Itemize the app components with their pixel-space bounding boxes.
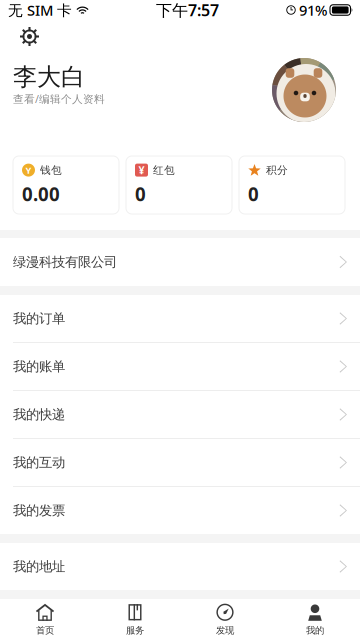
button[interactable]: 发现 <box>180 599 270 640</box>
staticText: 查看/编辑个人资料 <box>13 92 105 106</box>
button[interactable]: 设置 <box>20 27 39 46</box>
button[interactable]: 头像 <box>272 58 336 122</box>
staticText: 0.00 <box>22 182 60 206</box>
staticText: 我的互动 <box>13 454 65 471</box>
staticText: 我的 <box>306 625 324 636</box>
button[interactable]: 我的发票 <box>0 487 360 534</box>
staticText: Y <box>25 164 31 176</box>
staticText: ¥ <box>138 163 144 177</box>
button[interactable]: 绿漫科技有限公司 <box>0 238 360 286</box>
staticText: 我的快递 <box>13 406 65 423</box>
staticText: 0 <box>135 182 146 206</box>
staticText: 发现 <box>216 625 234 636</box>
button[interactable]: 我的互动 <box>0 439 360 486</box>
staticText: 我的订单 <box>13 310 65 327</box>
staticText: 我的地址 <box>13 558 65 575</box>
button[interactable]: 李大白 <box>13 62 105 106</box>
button[interactable]: ¥ <box>126 156 232 214</box>
button[interactable]: 首页 <box>0 599 90 640</box>
staticText: 绿漫科技有限公司 <box>13 254 117 270</box>
staticText: 我的账单 <box>13 358 65 375</box>
staticText: 服务 <box>126 625 144 636</box>
button[interactable]: 服务 <box>90 599 180 640</box>
button[interactable]: 我的地址 <box>0 543 360 590</box>
staticText: 我的发票 <box>13 502 65 519</box>
staticText: 钱包 <box>40 164 62 177</box>
staticText: 李大白 <box>13 62 85 92</box>
button[interactable]: 我的 <box>270 599 360 640</box>
staticText: 下午7:57 <box>156 0 219 21</box>
button[interactable]: Y <box>13 156 119 214</box>
staticText: 红包 <box>153 164 175 177</box>
staticText: 无 SIM 卡 <box>8 0 72 20</box>
button[interactable]: 积分 <box>239 156 345 214</box>
staticText: 0 <box>248 182 259 206</box>
button[interactable]: 我的账单 <box>0 343 360 390</box>
button[interactable]: 我的快递 <box>0 391 360 438</box>
staticText: 首页 <box>36 625 54 636</box>
staticText: 积分 <box>266 164 288 177</box>
button[interactable]: 我的订单 <box>0 295 360 342</box>
staticText: 91% <box>299 0 327 20</box>
